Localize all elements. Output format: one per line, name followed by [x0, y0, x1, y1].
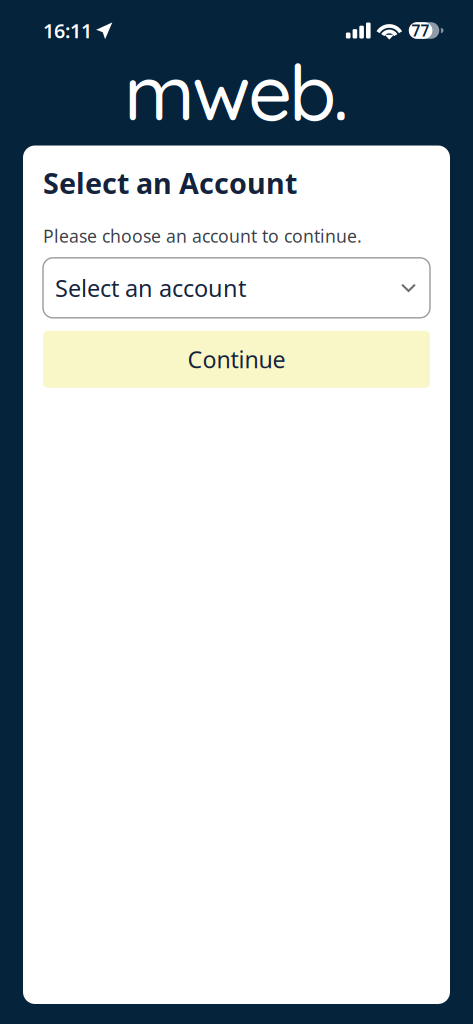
- button[interactable]: Continue: [43, 331, 430, 388]
- staticText: 16:11: [43, 17, 92, 44]
- staticText: 77: [412, 20, 430, 41]
- staticText: Continue: [187, 343, 285, 375]
- staticText: Select an account: [55, 272, 246, 304]
- button[interactable]: Select an account: [43, 258, 430, 318]
- staticText: mweb.: [124, 43, 349, 140]
- staticText: Select an Account: [43, 163, 297, 202]
- staticText: Please choose an account to continue.: [43, 224, 362, 248]
